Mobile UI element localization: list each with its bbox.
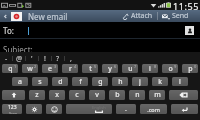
button[interactable]: ! (39, 54, 51, 62)
button[interactable]: l (172, 77, 188, 86)
staticText: f (79, 77, 82, 86)
button[interactable]: Attach (118, 10, 157, 22)
button[interactable]: @ (13, 54, 25, 62)
button[interactable]: m (149, 90, 165, 100)
button[interactable]: p (182, 64, 198, 73)
staticText: Sym (9, 111, 17, 114)
staticText: Subject: (3, 44, 33, 52)
staticText: y (108, 64, 112, 73)
button[interactable]: i (142, 64, 158, 73)
staticText: h (118, 77, 123, 86)
staticText: 2 (34, 64, 37, 69)
staticText: c (75, 90, 79, 100)
button[interactable]: h (112, 77, 128, 86)
button[interactable]: . (116, 104, 136, 114)
staticText: d (58, 77, 63, 86)
staticText: e (48, 64, 52, 73)
staticText: 4 (74, 64, 77, 69)
staticText: j (139, 77, 141, 86)
staticText: x (55, 90, 59, 100)
button[interactable]: Enter (171, 104, 198, 114)
staticText: 11:55 (173, 0, 200, 10)
button[interactable]: x (49, 90, 65, 100)
staticText: m (154, 90, 161, 100)
staticText: . (125, 104, 127, 114)
staticText: @ (16, 54, 23, 62)
staticText: 8 (154, 64, 157, 69)
button[interactable]: u (122, 64, 138, 73)
button[interactable]: ' (26, 54, 38, 62)
button[interactable]: k (152, 77, 168, 86)
staticText: u (128, 64, 133, 73)
staticText: - (5, 54, 8, 62)
staticText: ' (31, 54, 33, 62)
staticText: English (92, 105, 106, 110)
button[interactable]: o (162, 64, 178, 73)
staticText: i (149, 64, 151, 73)
button[interactable]: z (29, 90, 45, 100)
button[interactable]: Symbols (2, 104, 22, 114)
staticText: b (115, 90, 120, 100)
button[interactable]: n (129, 90, 145, 100)
staticText: Send (172, 11, 189, 21)
button[interactable]: q (2, 64, 18, 73)
staticText: s (38, 77, 42, 86)
button[interactable]: j (132, 77, 148, 86)
staticText: n (135, 90, 140, 100)
staticText: 1 (14, 64, 17, 69)
staticText: 3 (54, 64, 57, 69)
button[interactable]: .com (140, 104, 167, 114)
button[interactable]: y (102, 64, 118, 73)
staticText: 5 (94, 64, 97, 69)
button[interactable]: a (12, 77, 28, 86)
button[interactable]: b (109, 90, 125, 100)
button[interactable]: Choose contact (185, 26, 194, 35)
button[interactable]: r (62, 64, 78, 73)
staticText: a (18, 77, 22, 86)
staticText: .com (147, 106, 160, 113)
button[interactable]: Space (66, 104, 112, 114)
button[interactable]: t (82, 64, 98, 73)
staticText: g (98, 77, 103, 86)
button[interactable]: Backspace (169, 90, 198, 100)
button[interactable]: Shift (2, 90, 25, 100)
staticText: To: (3, 25, 14, 36)
staticText: Attach (131, 11, 153, 21)
button[interactable]: f (72, 77, 88, 86)
button[interactable]: Navigate up (0, 10, 11, 22)
staticText: ! (44, 54, 46, 62)
button[interactable]: e (42, 64, 58, 73)
button[interactable]: Settings (26, 104, 42, 114)
staticText: 9 (174, 64, 177, 69)
button[interactable]: - (0, 54, 12, 62)
staticText: t (89, 64, 92, 73)
staticText: r (69, 64, 72, 73)
staticText: w (27, 64, 33, 73)
button[interactable]: g (92, 77, 108, 86)
button[interactable]: Send (158, 10, 193, 22)
staticText: New email (28, 11, 68, 22)
button[interactable]: s (32, 77, 48, 86)
staticText: q (8, 64, 13, 73)
staticText: l (179, 77, 181, 86)
button[interactable]: c (69, 90, 85, 100)
button[interactable]: ? (52, 54, 64, 62)
staticText: , (70, 54, 72, 62)
button[interactable]: , (65, 54, 77, 62)
button[interactable]: v (89, 90, 105, 100)
button[interactable]: d (52, 77, 68, 86)
staticText: ? (56, 54, 60, 62)
staticText: z (35, 90, 39, 100)
staticText: 123 (8, 104, 17, 111)
staticText: 7 (134, 64, 137, 69)
staticText: 6 (114, 64, 117, 69)
staticText: v (95, 90, 99, 100)
staticText: p (188, 64, 193, 73)
button[interactable]: w (22, 64, 38, 73)
staticText: k (158, 77, 162, 86)
staticText: 0 (194, 64, 197, 69)
button[interactable]: Emoji (46, 104, 62, 114)
staticText: o (168, 64, 173, 73)
